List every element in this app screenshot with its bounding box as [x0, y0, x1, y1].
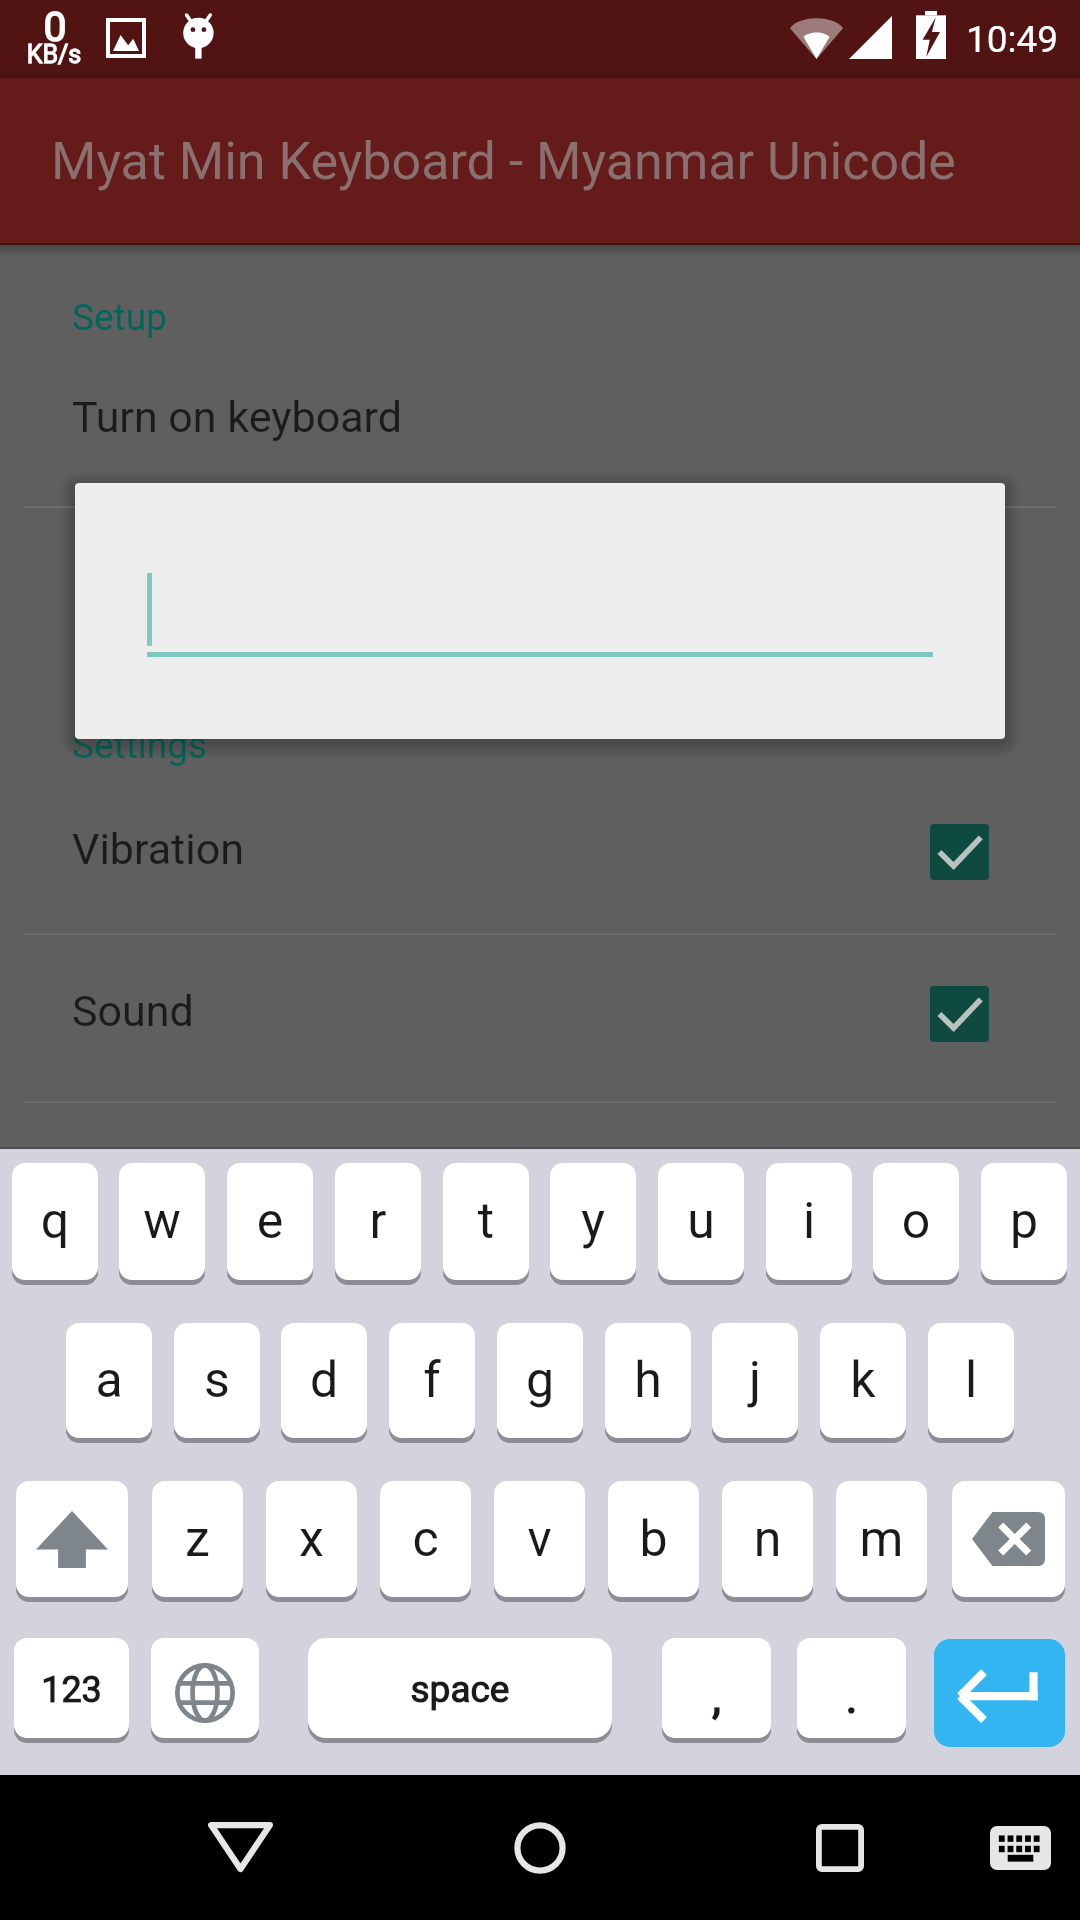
button[interactable]	[494, 1481, 585, 1597]
button[interactable]	[928, 1323, 1014, 1438]
button[interactable]	[608, 1481, 699, 1597]
button[interactable]: Recent apps	[786, 1794, 894, 1902]
button[interactable]: Home	[486, 1794, 594, 1902]
staticText: l	[928, 1351, 1014, 1410]
staticText: space	[308, 1668, 612, 1711]
button[interactable]	[443, 1163, 529, 1280]
staticText: q	[12, 1192, 98, 1251]
staticText: b	[608, 1510, 699, 1569]
staticText: w	[119, 1192, 205, 1251]
button[interactable]	[266, 1481, 357, 1597]
button[interactable]	[308, 1638, 612, 1738]
button[interactable]	[119, 1163, 205, 1280]
staticText: i	[766, 1192, 852, 1251]
staticText: 0	[0, 3, 115, 51]
button[interactable]: Enter	[934, 1639, 1065, 1747]
staticText: ,	[662, 1670, 771, 1724]
button[interactable]	[662, 1638, 771, 1738]
button[interactable]: Toggle	[930, 986, 989, 1042]
staticText: j	[712, 1351, 798, 1410]
staticText: e	[227, 1192, 313, 1251]
button[interactable]	[0, 360, 1080, 500]
staticText: o	[873, 1192, 959, 1251]
staticText: Turn on keyboard	[72, 392, 403, 442]
staticText: z	[152, 1510, 243, 1569]
button[interactable]	[797, 1638, 906, 1738]
button[interactable]	[174, 1323, 260, 1438]
button[interactable]: Back	[186, 1793, 294, 1901]
staticText: m	[836, 1510, 927, 1569]
button[interactable]	[389, 1323, 475, 1438]
staticText: p	[981, 1192, 1067, 1251]
staticText: Sound	[72, 986, 194, 1036]
button[interactable]	[12, 1163, 98, 1280]
button[interactable]	[605, 1323, 691, 1438]
button[interactable]	[981, 1163, 1067, 1280]
staticText: v	[494, 1510, 585, 1569]
staticText: Setup	[72, 296, 167, 339]
staticText: KB/s	[0, 40, 114, 69]
button[interactable]	[497, 1323, 583, 1438]
staticText: f	[389, 1351, 475, 1410]
button[interactable]	[722, 1481, 813, 1597]
button[interactable]	[0, 954, 1080, 1094]
staticText: u	[658, 1192, 744, 1251]
button[interactable]	[0, 78, 1080, 243]
staticText: 10:49	[966, 18, 1059, 61]
button[interactable]	[550, 1163, 636, 1280]
button[interactable]	[281, 1323, 367, 1438]
staticText: c	[380, 1510, 471, 1569]
button[interactable]	[152, 1481, 243, 1597]
button[interactable]	[873, 1163, 959, 1280]
button[interactable]	[712, 1323, 798, 1438]
button[interactable]	[14, 1638, 129, 1738]
staticText: Myat Min Keyboard - Myanmar Unicode	[51, 131, 956, 192]
staticText: x	[266, 1510, 357, 1569]
staticText: n	[722, 1510, 813, 1569]
staticText: y	[550, 1192, 636, 1251]
staticText: 123	[14, 1669, 129, 1711]
staticText: k	[820, 1351, 906, 1410]
staticText: Settings	[72, 724, 208, 767]
button[interactable]	[227, 1163, 313, 1280]
button[interactable]	[75, 483, 1005, 739]
staticText: h	[605, 1351, 691, 1410]
button[interactable]	[836, 1481, 927, 1597]
staticText: a	[66, 1351, 152, 1410]
button[interactable]	[820, 1323, 906, 1438]
staticText: d	[281, 1351, 367, 1410]
button[interactable]: Toggle	[930, 824, 989, 880]
button[interactable]	[335, 1163, 421, 1280]
staticText: .	[797, 1670, 906, 1724]
button[interactable]: Switch keyboard	[966, 1794, 1074, 1902]
button[interactable]: Backspace	[952, 1481, 1065, 1597]
staticText: s	[174, 1351, 260, 1410]
button[interactable]	[658, 1163, 744, 1280]
button[interactable]	[766, 1163, 852, 1280]
staticText: Vibration	[72, 824, 244, 874]
staticText: r	[335, 1192, 421, 1251]
button[interactable]: Shift	[16, 1481, 128, 1597]
button[interactable]	[66, 1323, 152, 1438]
button[interactable]	[380, 1481, 471, 1597]
button[interactable]	[0, 792, 1080, 932]
staticText: t	[443, 1192, 529, 1251]
button[interactable]: Change keyboard language	[151, 1638, 259, 1738]
staticText: g	[497, 1351, 583, 1410]
